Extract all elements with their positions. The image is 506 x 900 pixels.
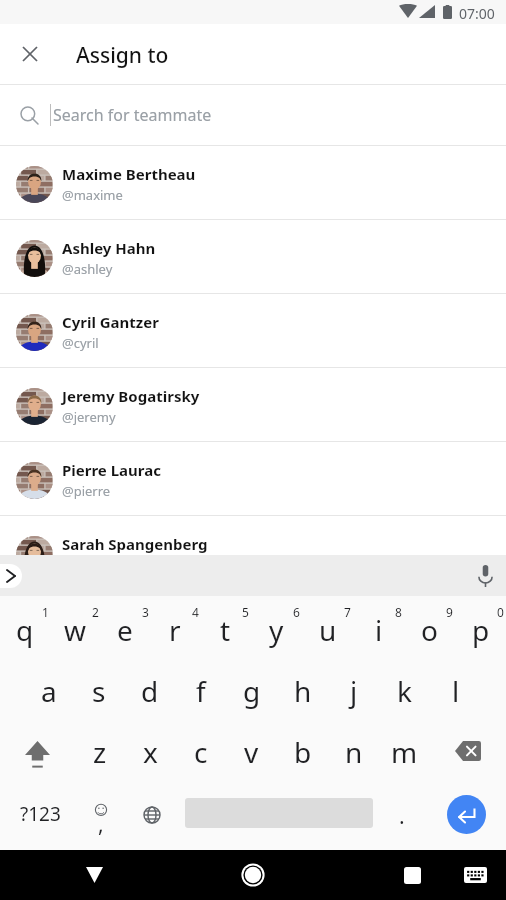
button[interactable]: d [124,662,175,724]
staticText: Cyril Gantzer [62,312,159,332]
staticText: 3 [142,604,149,620]
button[interactable]: Shift [0,724,75,786]
staticText: Assign to [76,41,169,70]
staticText: l [452,672,460,710]
staticText: ?123 [20,801,61,827]
button[interactable]: Maxime Bertheau [0,146,506,219]
staticText: t [220,611,231,649]
button[interactable]: Jeremy Bogatirsky [0,368,506,441]
staticText: e [117,611,133,649]
staticText: 6 [293,604,300,620]
staticText: i [375,611,383,649]
button[interactable]: v [226,724,277,786]
staticText: 0 [497,604,504,620]
staticText: k [397,672,412,710]
button[interactable]: 2 [50,601,100,662]
button[interactable]: 3 [100,601,150,662]
staticText: Sarah Spangenberg [62,534,208,554]
staticText: w [64,611,87,649]
staticText: z [93,733,107,771]
button[interactable]: c [175,724,226,786]
button[interactable]: l [430,662,481,724]
staticText: @pierre [62,482,111,500]
staticText: n [345,733,363,771]
staticText: g [243,672,261,710]
staticText: h [294,672,312,710]
staticText: u [319,611,337,649]
button[interactable]: 1 [0,601,50,662]
staticText: o [421,611,438,649]
staticText: . [399,802,405,831]
button[interactable]: Backspace [430,724,506,786]
staticText: 8 [395,604,402,620]
button[interactable]: Emoji and comma [77,786,125,850]
staticText: d [141,672,159,710]
staticText: 9 [446,604,453,620]
staticText: b [294,733,312,771]
staticText: v [244,733,259,771]
button[interactable]: z [75,724,125,786]
staticText: j [350,672,358,710]
staticText: @jeremy [62,408,116,426]
staticText: 5 [242,604,249,620]
button[interactable]: 8 [353,601,404,662]
staticText: p [472,611,490,649]
button[interactable]: a [24,662,74,724]
staticText: f [196,672,206,710]
staticText: c [194,733,208,771]
staticText: 7 [344,604,351,620]
button[interactable]: Back [72,853,116,897]
staticText: @ashley [62,260,113,278]
button[interactable]: m [379,724,430,786]
button[interactable]: Home [231,853,275,897]
button[interactable]: ?123 [0,786,80,850]
staticText: 2 [92,604,99,620]
button[interactable]: n [328,724,379,786]
button[interactable]: 5 [200,601,251,662]
button[interactable]: Cyril Gantzer [0,294,506,367]
button[interactable]: Recents [390,853,434,897]
staticText: r [169,611,181,649]
staticText: Jeremy Bogatirsky [62,386,200,406]
staticText: Maxime Bertheau [62,164,196,184]
staticText: 4 [192,604,199,620]
button[interactable]: Ashley Hahn [0,220,506,293]
button[interactable]: f [175,662,226,724]
staticText: m [391,733,418,771]
staticText: @cyril [62,334,99,352]
button[interactable]: 9 [404,601,455,662]
staticText: y [269,611,284,649]
staticText: 1 [42,604,49,620]
button[interactable]: j [328,662,379,724]
button[interactable]: Enter [447,795,486,834]
staticText: a [41,672,57,710]
staticText: Pierre Laurac [62,460,161,480]
button[interactable]: h [277,662,328,724]
staticText: x [143,733,158,771]
staticText: Search for teammate [53,104,212,126]
button[interactable]: Change language [127,783,177,847]
button[interactable]: Close [10,34,50,74]
button[interactable]: Sarah Spangenberg [0,516,506,555]
button[interactable]: k [379,662,430,724]
button[interactable]: 6 [251,601,302,662]
staticText: s [92,672,106,710]
button[interactable]: Voice input [469,560,501,592]
button[interactable]: 0 [455,601,506,662]
button[interactable]: . [378,786,426,850]
button[interactable]: x [125,724,175,786]
button[interactable]: 7 [302,601,353,662]
button[interactable]: 4 [150,601,200,662]
button[interactable]: b [277,724,328,786]
staticText: 07:00 [459,4,495,23]
button[interactable]: g [226,662,277,724]
button[interactable]: Expand suggestions [0,564,22,588]
button[interactable]: s [74,662,124,724]
staticText: @maxime [62,186,123,204]
staticText: q [16,611,34,649]
staticText: , [98,810,104,839]
button[interactable]: Pierre Laurac [0,442,506,515]
button[interactable]: Hide keyboard [457,857,493,893]
staticText: Ashley Hahn [62,238,156,258]
